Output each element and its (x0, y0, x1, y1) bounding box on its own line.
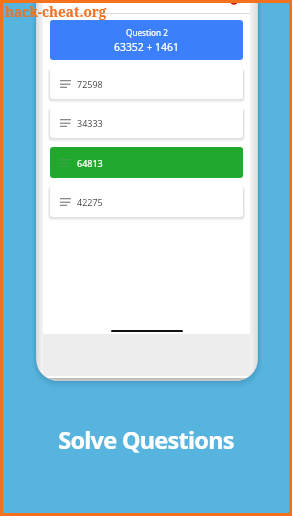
button[interactable]: 42275 (50, 186, 243, 217)
staticText: 42275 (77, 196, 103, 208)
staticText: 34333 (77, 117, 103, 129)
other: Home (111, 330, 183, 332)
staticText: Question 2 (126, 27, 168, 38)
staticText: Solve Questions (0, 424, 292, 456)
staticText: 64813 (77, 157, 103, 169)
staticText: hack-cheat.org (5, 3, 107, 21)
button[interactable]: 64813 (50, 147, 243, 178)
staticText: 63352 + 1461 (114, 40, 179, 54)
staticText: 72598 (77, 78, 103, 90)
button[interactable]: 34333 (50, 107, 243, 138)
button[interactable]: 72598 (50, 68, 243, 99)
button[interactable]: Question 2 (50, 20, 243, 60)
